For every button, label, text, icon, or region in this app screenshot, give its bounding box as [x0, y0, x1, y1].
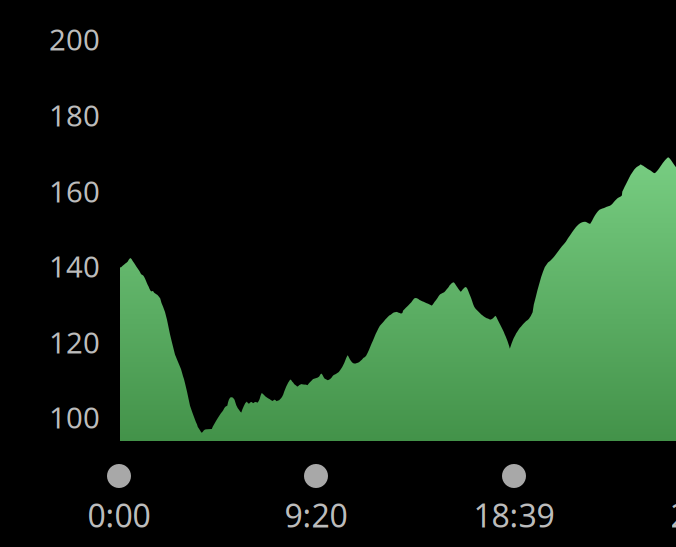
- staticText: 160: [49, 171, 100, 210]
- staticText: 120: [49, 322, 100, 361]
- staticText: 140: [49, 246, 100, 285]
- staticText: 9:20: [284, 494, 347, 536]
- staticText: 180: [49, 95, 100, 134]
- staticText: 100: [49, 397, 100, 436]
- staticText: 18:39: [473, 494, 554, 536]
- staticText: 200: [49, 19, 100, 58]
- staticText: 0:00: [87, 494, 150, 536]
- staticText: 27:59: [670, 494, 676, 536]
